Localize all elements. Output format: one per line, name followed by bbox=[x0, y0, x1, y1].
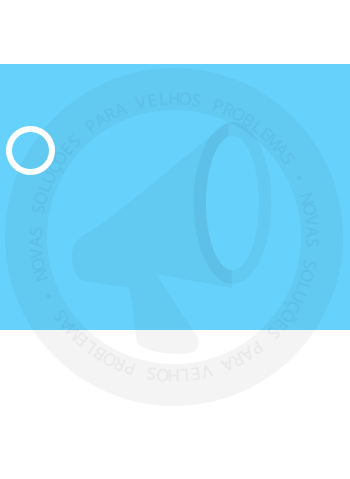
staticText: R bbox=[104, 102, 115, 125]
staticText bbox=[302, 177, 307, 200]
staticText: P bbox=[252, 337, 263, 360]
staticText: O bbox=[102, 348, 116, 371]
staticText: A bbox=[307, 220, 318, 243]
staticText: E bbox=[76, 329, 86, 352]
staticText: O bbox=[303, 198, 317, 221]
staticText: Ç bbox=[48, 156, 59, 179]
staticText: Ç bbox=[289, 295, 300, 318]
staticText: E bbox=[147, 88, 157, 111]
staticText: N bbox=[301, 187, 314, 210]
staticText: P bbox=[85, 114, 96, 137]
staticText: S bbox=[33, 197, 43, 220]
staticText: B bbox=[94, 343, 105, 366]
staticText: O bbox=[232, 103, 246, 126]
staticText: V bbox=[201, 360, 212, 383]
staticText: L bbox=[40, 176, 49, 199]
staticText: S bbox=[308, 231, 318, 254]
staticText: A bbox=[223, 353, 234, 376]
staticText bbox=[309, 243, 314, 266]
staticText: O bbox=[179, 87, 193, 110]
staticText: V bbox=[136, 90, 147, 113]
staticText: S bbox=[146, 363, 156, 386]
staticText: E bbox=[276, 314, 286, 337]
staticText: V bbox=[30, 242, 41, 265]
staticText: M bbox=[266, 129, 282, 152]
staticText bbox=[34, 208, 39, 231]
staticText: A bbox=[114, 97, 125, 120]
staticText: H bbox=[167, 364, 180, 387]
staticText: R bbox=[114, 353, 125, 376]
staticText: O bbox=[31, 253, 45, 276]
staticText: H bbox=[168, 86, 181, 109]
staticText: V bbox=[306, 209, 317, 232]
staticText: U bbox=[42, 166, 55, 189]
staticText: R bbox=[223, 98, 234, 121]
staticText: S bbox=[192, 88, 202, 111]
staticText: S bbox=[269, 322, 279, 345]
staticText: Õ bbox=[281, 305, 295, 328]
staticText: S bbox=[30, 219, 40, 242]
staticText: L bbox=[299, 275, 308, 298]
staticText: U bbox=[293, 285, 306, 308]
staticText: P bbox=[213, 94, 224, 117]
staticText: M bbox=[65, 321, 81, 344]
staticText: A bbox=[276, 138, 287, 161]
staticText: Õ bbox=[53, 146, 67, 169]
staticText: L bbox=[86, 336, 95, 359]
staticText: E bbox=[191, 363, 201, 386]
staticText: R bbox=[233, 349, 244, 372]
staticText: E bbox=[62, 137, 72, 160]
staticText: E bbox=[261, 122, 271, 145]
staticText: A bbox=[94, 108, 105, 131]
staticText: A bbox=[30, 231, 41, 254]
staticText: L bbox=[159, 87, 168, 110]
staticText: A bbox=[61, 313, 72, 336]
staticText: O bbox=[300, 264, 314, 287]
staticText: S bbox=[284, 147, 294, 170]
staticText: S bbox=[54, 304, 64, 327]
staticText: O bbox=[34, 186, 48, 209]
staticText: B bbox=[243, 108, 254, 131]
staticText: O bbox=[155, 364, 169, 387]
staticText: A bbox=[242, 343, 253, 366]
staticText: S bbox=[69, 129, 79, 152]
staticText: L bbox=[180, 364, 189, 387]
staticText: N bbox=[34, 264, 47, 287]
staticText: S bbox=[305, 254, 315, 277]
staticText: P bbox=[124, 357, 135, 380]
staticText: L bbox=[253, 115, 262, 138]
